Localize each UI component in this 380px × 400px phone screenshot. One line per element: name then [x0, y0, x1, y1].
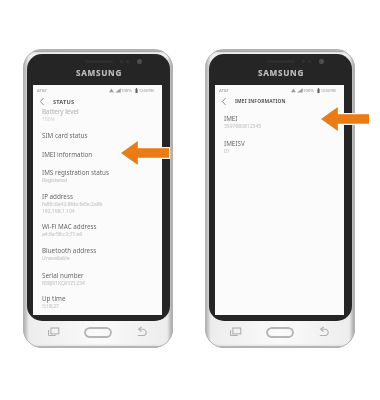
- button[interactable]: IMEISV: [215, 139, 344, 155]
- staticText: 100%: [42, 116, 55, 123]
- staticText: IP address: [42, 192, 73, 201]
- staticText: IMEI INFORMATION: [235, 98, 286, 105]
- staticText: IMEI information: [42, 150, 93, 159]
- staticText: SIM card status: [42, 131, 88, 140]
- staticText: SAMSUNG: [258, 67, 305, 78]
- button[interactable]: Recent apps: [226, 324, 245, 339]
- button[interactable]: Bluetooth address: [33, 246, 162, 262]
- staticText: Registered: [42, 177, 68, 184]
- staticText: Unavailable: [42, 255, 70, 262]
- staticText: AT&T: [219, 88, 229, 94]
- staticText: STATUS: [53, 98, 75, 106]
- staticText: 100%: [303, 88, 314, 94]
- button[interactable]: IMEI information: [33, 150, 162, 159]
- staticText: IMS registration status: [42, 168, 109, 177]
- button[interactable]: Serial number: [33, 271, 162, 287]
- button[interactable]: SIM card status: [33, 131, 162, 140]
- staticText: Bluetooth address: [42, 246, 97, 255]
- button[interactable]: Up time: [33, 294, 162, 310]
- staticText: R58J91KQXYZ1234: [42, 280, 85, 287]
- staticText: 3:18:27: [42, 303, 59, 310]
- staticText: Serial number: [42, 271, 84, 280]
- staticText: 01: [224, 148, 230, 155]
- staticText: IMEISV: [224, 139, 245, 148]
- button[interactable]: Back: [132, 324, 151, 339]
- staticText: 100%: [121, 88, 132, 94]
- staticText: Up time: [42, 294, 66, 303]
- staticText: SAMSUNG: [76, 67, 123, 78]
- button[interactable]: Battery level: [33, 107, 162, 123]
- button[interactable]: IMS registration status: [33, 168, 162, 184]
- button[interactable]: Recent apps: [44, 324, 63, 339]
- button[interactable]: Navigate up: [222, 96, 231, 107]
- button[interactable]: Home: [84, 327, 112, 338]
- staticText: IMEI: [224, 114, 238, 123]
- button[interactable]: IP address: [33, 192, 162, 215]
- staticText: 12:00 PM: [139, 88, 154, 93]
- staticText: 12:00 PM: [321, 88, 336, 93]
- staticText: 192.168.1.104: [42, 208, 75, 215]
- button[interactable]: Back: [314, 324, 333, 339]
- staticText: AT&T: [37, 88, 47, 94]
- button[interactable]: Navigate up: [40, 96, 49, 107]
- button[interactable]: Wi-Fi MAC address: [33, 222, 162, 238]
- staticText: Battery level: [42, 107, 79, 116]
- staticText: Wi-Fi MAC address: [42, 222, 97, 231]
- staticText: 3597680812345: [224, 123, 262, 130]
- button[interactable]: IMEI: [215, 114, 344, 130]
- staticText: a4:9a:58:c2:71:e0: [42, 231, 83, 238]
- staticText: fe80::6a42:8fde:fa5e:2a8b: [42, 201, 103, 208]
- button[interactable]: Home: [266, 327, 294, 338]
